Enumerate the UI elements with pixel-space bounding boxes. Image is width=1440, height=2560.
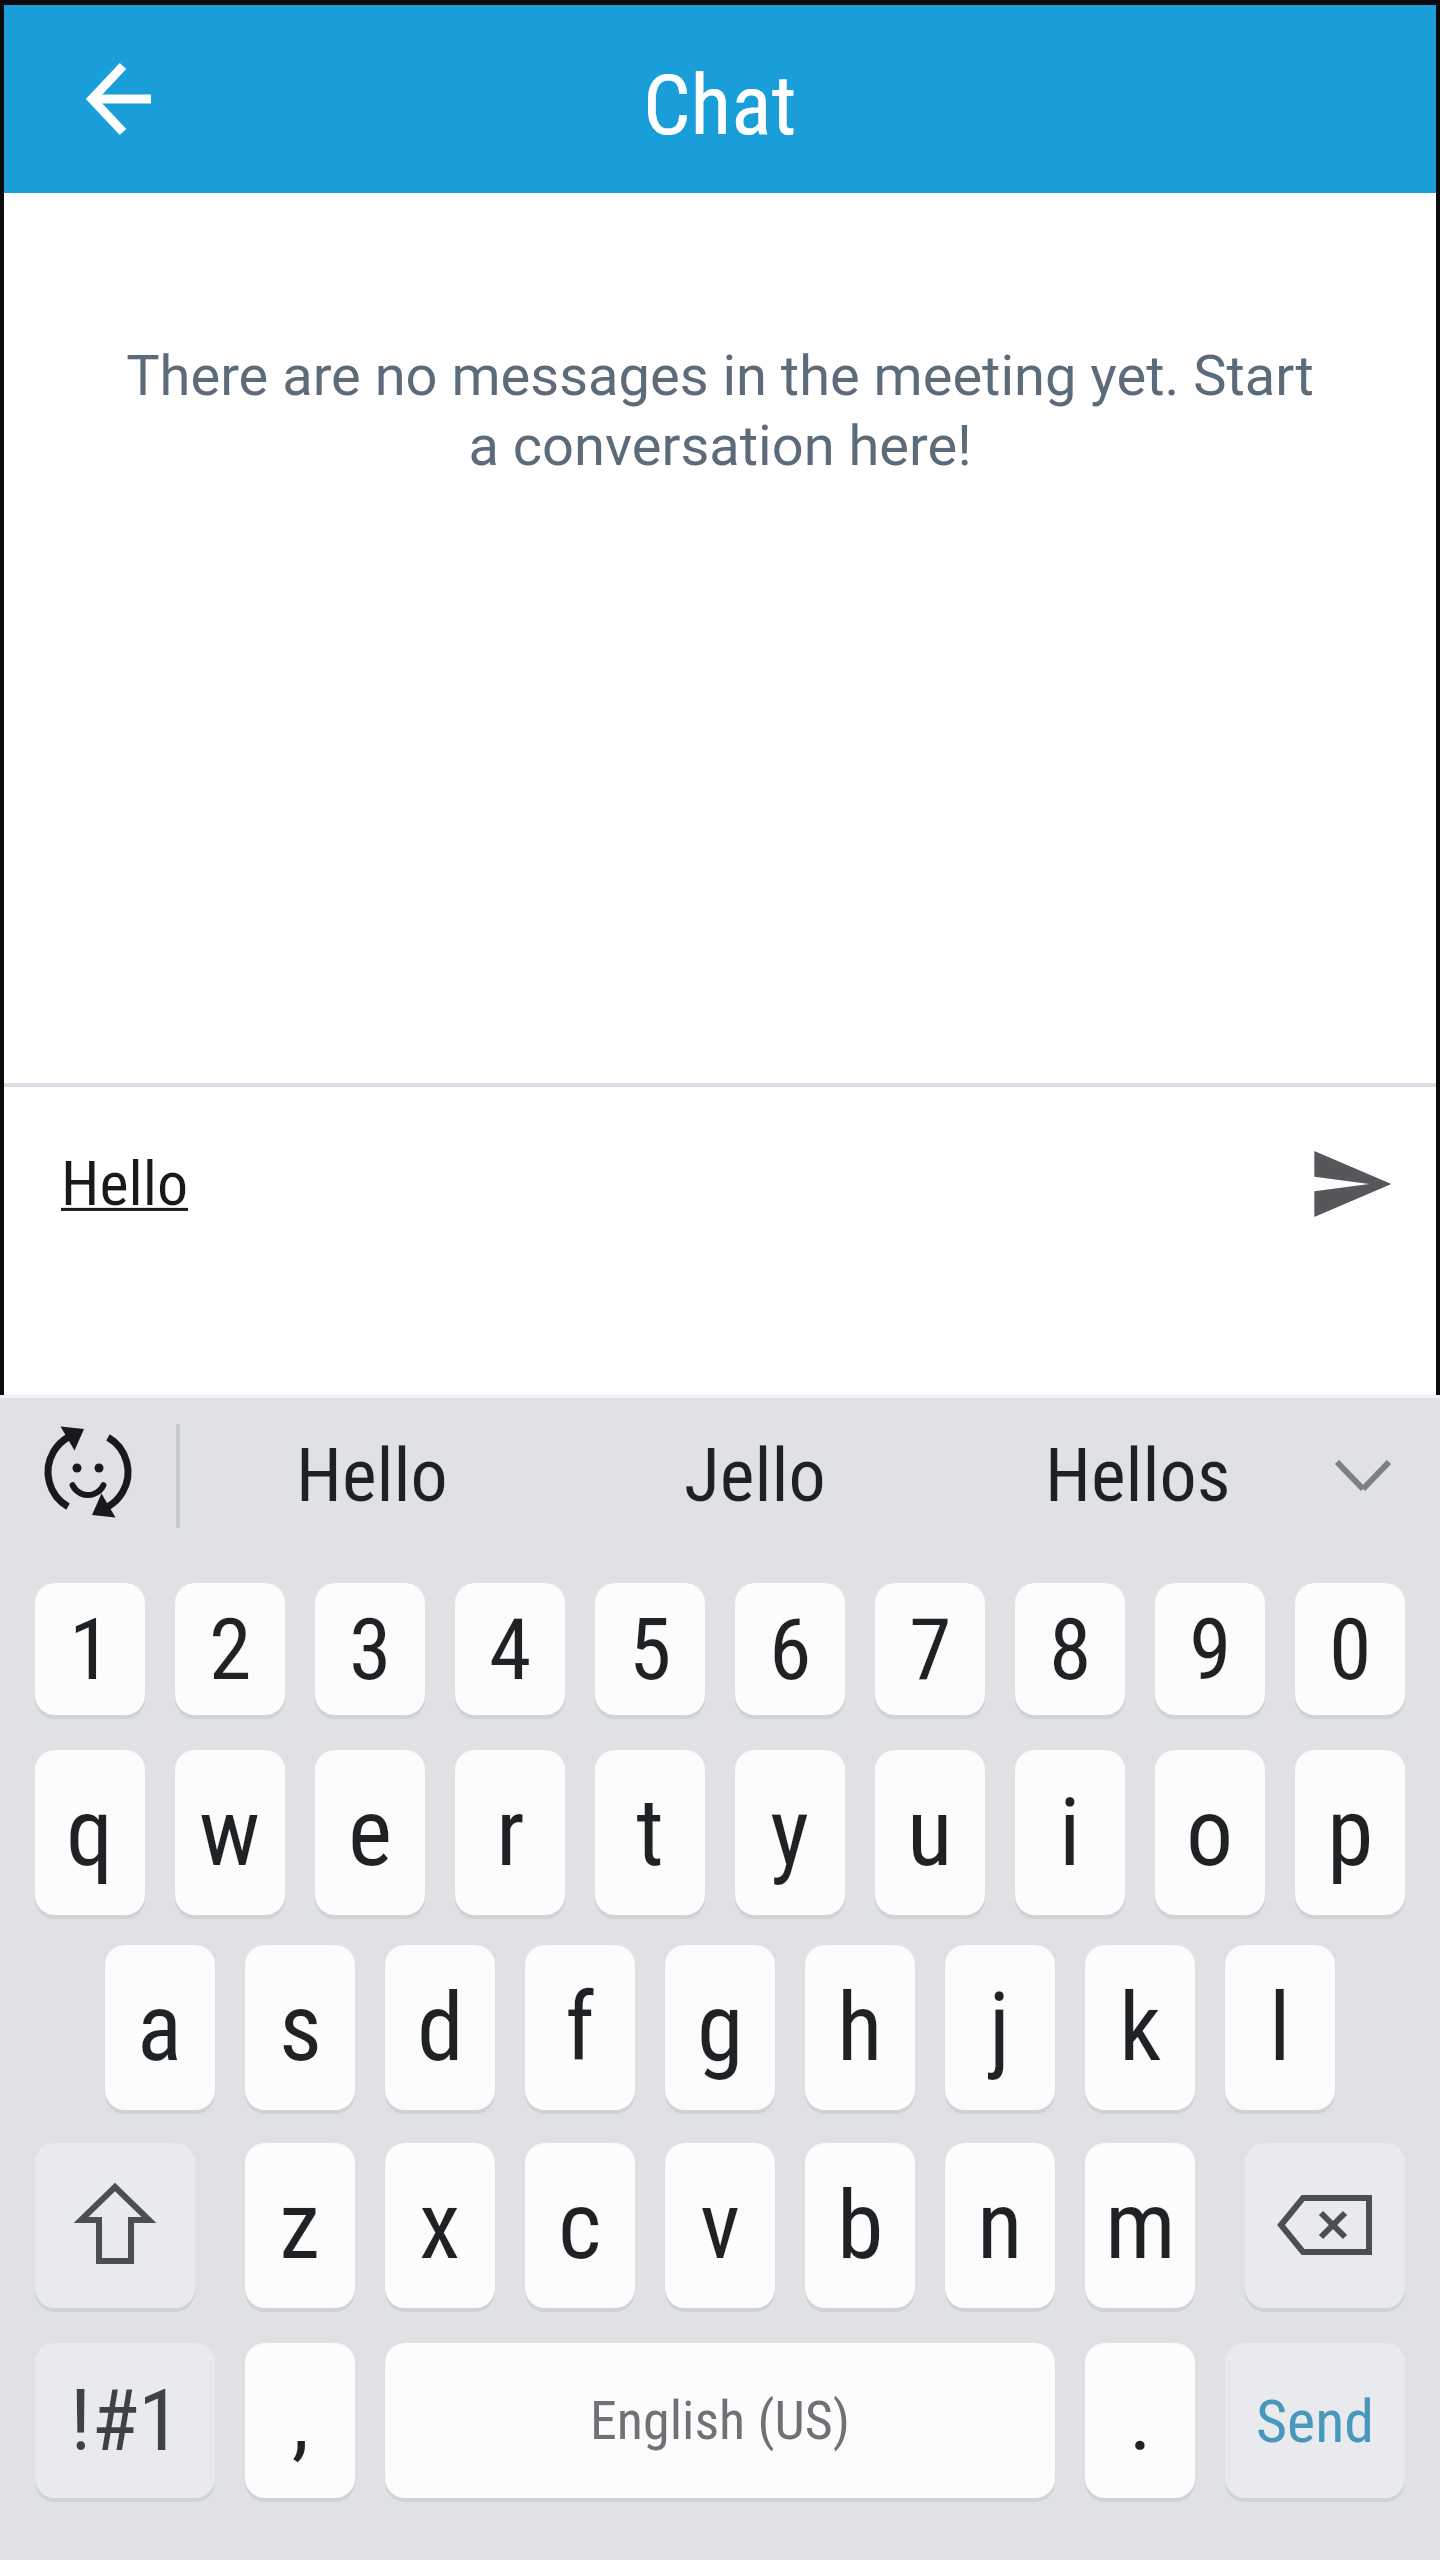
button[interactable]: 3 bbox=[315, 1583, 425, 1715]
button[interactable]: 0 bbox=[1295, 1583, 1405, 1715]
button[interactable] bbox=[85, 60, 157, 138]
button[interactable] bbox=[1245, 2143, 1405, 2308]
staticText: i bbox=[1059, 1778, 1081, 1888]
staticText: Chat bbox=[643, 56, 797, 154]
staticText: x bbox=[419, 2171, 461, 2281]
staticText: b bbox=[837, 2171, 884, 2281]
button[interactable] bbox=[1307, 1140, 1395, 1220]
button[interactable]: d bbox=[385, 1945, 495, 2110]
staticText: 8 bbox=[1049, 1599, 1092, 1700]
staticText: 0 bbox=[1329, 1599, 1372, 1700]
button[interactable] bbox=[35, 2143, 195, 2308]
button[interactable]: Hello bbox=[252, 1420, 492, 1530]
button[interactable]: 8 bbox=[1015, 1583, 1125, 1715]
button[interactable]: h bbox=[805, 1945, 915, 2110]
staticText: m bbox=[1105, 2171, 1176, 2281]
button[interactable]: 1 bbox=[35, 1583, 145, 1715]
button[interactable]: Jello bbox=[635, 1420, 875, 1530]
staticText: 5 bbox=[629, 1599, 672, 1700]
button[interactable]: English (US) bbox=[385, 2343, 1055, 2498]
button[interactable]: p bbox=[1295, 1750, 1405, 1915]
staticText: 1 bbox=[69, 1599, 112, 1700]
button[interactable]: Hellos bbox=[1018, 1420, 1258, 1530]
staticText: 9 bbox=[1189, 1599, 1232, 1700]
staticText: q bbox=[66, 1778, 114, 1888]
staticText: r bbox=[496, 1778, 525, 1888]
button[interactable]: !#1 bbox=[35, 2343, 215, 2498]
staticText: Hellos bbox=[1045, 1432, 1231, 1519]
button[interactable]: a bbox=[105, 1945, 215, 2110]
button[interactable]: c bbox=[525, 2143, 635, 2308]
staticText: h bbox=[837, 1973, 883, 2083]
button[interactable] bbox=[4, 1087, 1254, 1307]
staticText: Hello bbox=[296, 1432, 448, 1519]
staticText: 3 bbox=[349, 1599, 392, 1700]
button[interactable]: 5 bbox=[595, 1583, 705, 1715]
button[interactable]: e bbox=[315, 1750, 425, 1915]
staticText: y bbox=[770, 1778, 810, 1888]
button[interactable]: 6 bbox=[735, 1583, 845, 1715]
staticText: n bbox=[977, 2171, 1023, 2281]
button[interactable]: y bbox=[735, 1750, 845, 1915]
button[interactable] bbox=[1329, 1455, 1397, 1499]
staticText: o bbox=[1186, 1778, 1234, 1888]
button[interactable]: , bbox=[245, 2343, 355, 2498]
button[interactable] bbox=[40, 1424, 136, 1520]
button[interactable]: q bbox=[35, 1750, 145, 1915]
button[interactable]: x bbox=[385, 2143, 495, 2308]
staticText: z bbox=[279, 2171, 321, 2281]
button[interactable]: k bbox=[1085, 1945, 1195, 2110]
staticText: Jello bbox=[684, 1432, 826, 1519]
button[interactable]: 7 bbox=[875, 1583, 985, 1715]
staticText: e bbox=[348, 1778, 393, 1888]
button[interactable]: z bbox=[245, 2143, 355, 2308]
staticText: 6 bbox=[769, 1599, 812, 1700]
staticText: d bbox=[417, 1973, 464, 2083]
staticText: Hello bbox=[61, 1147, 189, 1220]
button[interactable]: n bbox=[945, 2143, 1055, 2308]
button[interactable]: f bbox=[525, 1945, 635, 2110]
staticText: a bbox=[137, 1973, 183, 2083]
button[interactable]: u bbox=[875, 1750, 985, 1915]
staticText: w bbox=[199, 1778, 261, 1888]
button[interactable]: b bbox=[805, 2143, 915, 2308]
staticText: f bbox=[565, 1973, 595, 2083]
staticText: 2 bbox=[209, 1599, 252, 1700]
staticText: j bbox=[989, 1973, 1011, 2083]
button[interactable]: i bbox=[1015, 1750, 1125, 1915]
staticText: p bbox=[1327, 1778, 1374, 1888]
staticText: c bbox=[558, 2171, 602, 2281]
button[interactable]: Send bbox=[1225, 2343, 1405, 2498]
staticText: t bbox=[636, 1778, 664, 1888]
staticText: . bbox=[1129, 2370, 1152, 2471]
staticText: k bbox=[1119, 1973, 1162, 2083]
button[interactable]: g bbox=[665, 1945, 775, 2110]
staticText: 4 bbox=[489, 1599, 532, 1700]
button[interactable]: v bbox=[665, 2143, 775, 2308]
staticText: English (US) bbox=[590, 2389, 851, 2452]
button[interactable]: j bbox=[945, 1945, 1055, 2110]
button[interactable]: 2 bbox=[175, 1583, 285, 1715]
staticText: s bbox=[279, 1973, 322, 2083]
button[interactable]: w bbox=[175, 1750, 285, 1915]
staticText: g bbox=[697, 1973, 744, 2083]
staticText: u bbox=[907, 1778, 953, 1888]
staticText: v bbox=[700, 2171, 741, 2281]
button[interactable]: s bbox=[245, 1945, 355, 2110]
button[interactable]: 4 bbox=[455, 1583, 565, 1715]
staticText: Send bbox=[1256, 2386, 1375, 2456]
staticText: , bbox=[292, 2370, 309, 2471]
button[interactable]: r bbox=[455, 1750, 565, 1915]
staticText: There are no messages in the meeting yet… bbox=[126, 343, 1314, 479]
button[interactable]: 9 bbox=[1155, 1583, 1265, 1715]
staticText: 7 bbox=[909, 1599, 952, 1700]
button[interactable]: . bbox=[1085, 2343, 1195, 2498]
staticText: l bbox=[1269, 1973, 1291, 2083]
staticText: !#1 bbox=[70, 2370, 181, 2471]
button[interactable]: l bbox=[1225, 1945, 1335, 2110]
button[interactable]: o bbox=[1155, 1750, 1265, 1915]
button[interactable]: t bbox=[595, 1750, 705, 1915]
button[interactable]: m bbox=[1085, 2143, 1195, 2308]
